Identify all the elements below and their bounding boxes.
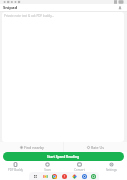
button[interactable]: Find nearby: [0, 142, 63, 152]
button[interactable]: PDF Buddy: [0, 161, 31, 173]
button[interactable]: App 2: [41, 172, 49, 180]
button[interactable]: Settings: [95, 161, 127, 173]
staticText: Convert: [74, 168, 85, 172]
staticText: PDF Buddy: [8, 168, 23, 172]
button[interactable]: App 7: [89, 172, 97, 180]
button[interactable]: Account: [117, 5, 123, 11]
staticText: Find nearby: [24, 145, 44, 150]
button[interactable]: App 4: [60, 172, 68, 180]
button[interactable]: App 3: [50, 172, 58, 180]
staticText: Start Speed Reading: [47, 155, 80, 159]
button[interactable]: Convert: [63, 161, 95, 173]
staticText: Settings: [106, 168, 117, 172]
button[interactable]: App 1: [31, 172, 39, 180]
staticText: Private note text & ask PDF buddy...: [4, 14, 55, 18]
button[interactable]: App 6: [80, 172, 88, 180]
staticText: Snipad: [3, 5, 18, 11]
button[interactable]: Scan: [31, 161, 63, 173]
button[interactable]: App 5: [70, 172, 78, 180]
staticText: Rate Us: [91, 145, 104, 150]
button[interactable]: Start Speed Reading: [3, 152, 124, 161]
button[interactable]: Rate Us: [64, 142, 127, 152]
staticText: Scan: [44, 168, 51, 172]
